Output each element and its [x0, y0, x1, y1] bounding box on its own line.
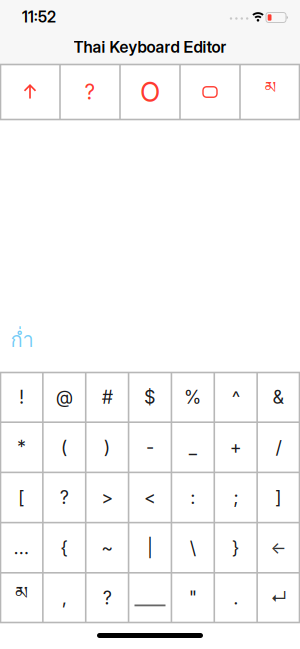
staticText: . — [233, 587, 238, 609]
staticText: Thai Keyboard Editor — [73, 37, 226, 57]
staticText: ] — [275, 487, 282, 508]
button[interactable]: [ — [0, 472, 43, 523]
button[interactable]: > — [86, 472, 129, 523]
staticText: ? — [103, 587, 112, 609]
staticText: ~ — [101, 537, 113, 559]
button[interactable]: ? — [86, 573, 129, 623]
button[interactable]: ^ — [214, 372, 257, 422]
staticText: , — [62, 587, 67, 609]
staticText: } — [232, 537, 240, 559]
button[interactable]: + — [214, 422, 257, 472]
staticText: - — [146, 436, 154, 458]
button[interactable]: ~ — [86, 523, 129, 573]
staticText: ^ — [232, 386, 240, 408]
staticText: { — [60, 537, 68, 559]
button[interactable]: @ — [43, 372, 86, 422]
button[interactable]: | — [129, 523, 171, 573]
button[interactable]: & — [257, 372, 300, 422]
staticText: + — [230, 436, 242, 458]
button[interactable]: ; — [214, 472, 257, 523]
button[interactable]: … — [0, 523, 43, 573]
staticText: @ — [56, 386, 73, 408]
staticText: ; — [233, 487, 238, 508]
staticText: ก่ำ — [10, 324, 33, 355]
staticText: མ — [15, 573, 28, 623]
button[interactable]: _ — [171, 422, 214, 472]
staticText: ! — [19, 386, 24, 408]
button[interactable]: ? — [60, 64, 120, 120]
button[interactable]: ] — [257, 472, 300, 523]
button[interactable]: * — [0, 422, 43, 472]
staticText: ( — [61, 436, 68, 458]
staticText: \ — [190, 537, 196, 559]
button[interactable]: མ — [240, 64, 300, 120]
staticText: ↵ — [271, 588, 287, 608]
staticText: ) — [104, 436, 111, 458]
button[interactable]: \ — [171, 523, 214, 573]
staticText: _ — [189, 436, 197, 458]
button[interactable]: < — [129, 472, 171, 523]
staticText: … — [13, 537, 29, 559]
staticText: " — [189, 587, 197, 609]
staticText: > — [101, 487, 113, 508]
button[interactable]: ) — [86, 422, 129, 472]
staticText: < — [144, 487, 156, 508]
button[interactable]: . — [214, 573, 257, 623]
staticText: : — [190, 487, 195, 508]
button[interactable]: མ — [0, 573, 43, 623]
button[interactable]: / — [257, 422, 300, 472]
button[interactable]: - — [129, 422, 171, 472]
staticText: | — [147, 537, 153, 559]
staticText: ? — [84, 79, 95, 104]
staticText: [ — [18, 487, 25, 508]
button[interactable]: Space — [180, 64, 240, 120]
button[interactable]: : — [171, 472, 214, 523]
staticText: % — [184, 386, 202, 408]
button[interactable]: { — [43, 523, 86, 573]
staticText: མ — [264, 70, 275, 114]
button[interactable]: # — [86, 372, 129, 422]
button[interactable]: $ — [129, 372, 171, 422]
button[interactable]: , — [43, 573, 86, 623]
button[interactable]: Backspace — [257, 523, 300, 573]
staticText: # — [102, 386, 113, 408]
button[interactable]: Space — [129, 573, 171, 623]
button[interactable]: O — [120, 64, 180, 120]
button[interactable]: ( — [43, 422, 86, 472]
button[interactable]: } — [214, 523, 257, 573]
button[interactable]: Shift — [0, 64, 60, 120]
staticText: / — [276, 436, 282, 458]
button[interactable]: ? — [43, 472, 86, 523]
button[interactable]: % — [171, 372, 214, 422]
staticText: ? — [60, 487, 69, 508]
staticText: $ — [144, 386, 156, 408]
staticText: 11:52 — [22, 8, 56, 26]
staticText: O — [140, 76, 160, 108]
staticText: & — [273, 386, 285, 408]
staticText: * — [17, 436, 26, 458]
button[interactable]: ! — [0, 372, 43, 422]
button[interactable]: Return — [257, 573, 300, 623]
button[interactable]: " — [171, 573, 214, 623]
staticText: ← — [271, 538, 287, 558]
